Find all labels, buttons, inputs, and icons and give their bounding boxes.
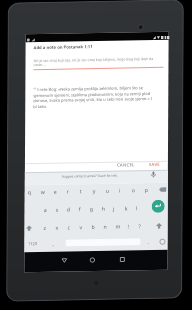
button[interactable] xyxy=(152,219,166,232)
button[interactable]: ?123 xyxy=(26,237,40,251)
button[interactable]: p xyxy=(141,184,152,195)
button[interactable]: i xyxy=(115,185,124,195)
staticText: Nit je sto onaj koji sije, nit je sto on… xyxy=(31,0,156,122)
button[interactable] xyxy=(62,201,144,284)
button[interactable]: y xyxy=(89,185,99,196)
button[interactable]: o xyxy=(128,184,139,195)
button[interactable]: u xyxy=(102,185,113,196)
button[interactable]: ! xyxy=(124,221,133,230)
staticText: donose, svako prema svojoj vrsti, što u … xyxy=(30,37,155,162)
button[interactable]: v xyxy=(76,222,86,232)
button[interactable] xyxy=(145,193,171,219)
button[interactable] xyxy=(156,236,168,248)
button[interactable]: . xyxy=(144,237,153,246)
staticText: raste ... xyxy=(31,55,49,74)
button[interactable]: e xyxy=(50,186,60,196)
staticText: Suggest contact names? Touch for info. xyxy=(60,145,121,207)
button[interactable]: x xyxy=(52,222,62,232)
button[interactable]: z xyxy=(40,222,50,232)
button[interactable] xyxy=(116,253,128,266)
button[interactable]: a xyxy=(40,204,50,214)
button[interactable] xyxy=(22,222,36,235)
button[interactable]: n xyxy=(100,221,111,232)
button[interactable] xyxy=(86,254,98,266)
button[interactable]: w xyxy=(37,185,49,197)
staticText: Add a note on Postanak 1:11 xyxy=(30,15,96,80)
button[interactable]: CANCEL xyxy=(114,153,138,178)
button[interactable]: g xyxy=(86,203,97,214)
button[interactable]: s xyxy=(52,204,62,214)
button[interactable]: l xyxy=(132,203,141,212)
button[interactable]: f xyxy=(75,204,84,213)
button[interactable]: k xyxy=(121,203,131,213)
button[interactable]: h xyxy=(98,203,109,214)
button[interactable]: m xyxy=(112,220,124,232)
button[interactable]: c xyxy=(64,222,74,232)
button[interactable]: d xyxy=(63,203,74,214)
button[interactable]: ? xyxy=(135,221,145,231)
button[interactable]: SAVE xyxy=(146,156,163,173)
button[interactable]: , xyxy=(49,239,58,248)
button[interactable] xyxy=(156,183,170,197)
button[interactable]: q xyxy=(24,186,35,197)
button[interactable]: t xyxy=(76,186,85,195)
button[interactable]: b xyxy=(88,221,99,232)
button[interactable]: j xyxy=(109,204,118,213)
staticText: sjemenom sjemeni, stablima plodonosnim, … xyxy=(30,33,153,156)
staticText: ¹¹ I reče Bog: «Neka zemlja proklija zel… xyxy=(30,31,146,146)
button[interactable]: r xyxy=(63,186,73,196)
staticText: bi tako. xyxy=(31,97,50,116)
button[interactable] xyxy=(58,254,70,267)
